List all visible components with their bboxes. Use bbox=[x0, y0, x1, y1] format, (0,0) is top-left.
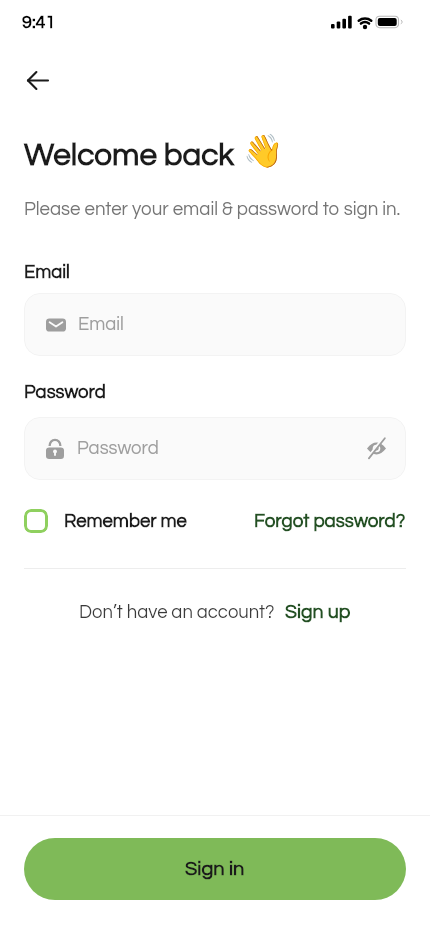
button[interactable]: Email bbox=[24, 293, 406, 356]
staticText: 9:41 bbox=[22, 13, 56, 32]
staticText: Remember me bbox=[64, 512, 187, 531]
staticText: Email bbox=[78, 315, 124, 334]
staticText: Password bbox=[77, 439, 159, 458]
button[interactable]: Sign in bbox=[24, 838, 406, 900]
staticText: Password bbox=[24, 383, 106, 402]
staticText: Don’t have an account? bbox=[79, 603, 275, 622]
staticText: Please enter your email & password to si… bbox=[24, 200, 401, 219]
button[interactable]: Password bbox=[24, 417, 406, 480]
button[interactable]: Forgot password? bbox=[254, 512, 406, 531]
staticText: Sign in bbox=[185, 859, 245, 880]
staticText: Email bbox=[24, 263, 70, 282]
button[interactable] bbox=[24, 509, 48, 533]
staticText: 👋 bbox=[243, 132, 284, 170]
button[interactable]: Sign up bbox=[285, 602, 351, 622]
staticText: Welcome back bbox=[24, 139, 235, 171]
staticText: Forgot password? bbox=[254, 512, 406, 531]
staticText: Sign up bbox=[285, 602, 351, 622]
button[interactable] bbox=[22, 64, 54, 96]
